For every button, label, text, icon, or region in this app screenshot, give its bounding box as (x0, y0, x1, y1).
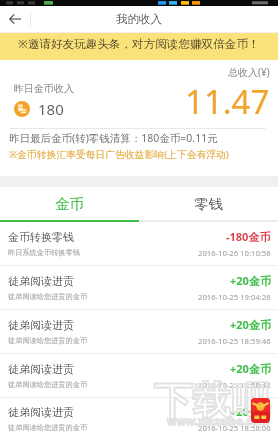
staticText: 2016-10-26 10:10:58 (198, 248, 271, 258)
staticText: www.xiazaiba.com (167, 413, 270, 428)
staticText: -180金币 (226, 229, 271, 244)
staticText: 金币转换零钱 (8, 230, 74, 244)
staticText: 金币 (55, 195, 84, 213)
staticText: 徒弟阅读给您进贡的金币 (8, 423, 88, 432)
staticText: 昨日系统金币转换零钱 (8, 248, 80, 257)
staticText: 2016-10-25 18:58:00 (198, 423, 271, 433)
staticText: +20金币 (230, 404, 271, 419)
button[interactable]: 金币 (0, 187, 139, 222)
other: 红包 (251, 398, 270, 423)
staticText: 徒弟阅读进贡 (8, 274, 74, 288)
staticText: 总收入(¥) (228, 65, 270, 79)
staticText: 180 (38, 99, 64, 119)
button[interactable]: 徒弟阅读进贡 (0, 266, 278, 310)
staticText: 2016-10-25 18:58:42 (198, 380, 271, 390)
staticText: ※邀请好友玩趣头条，对方阅读您赚双倍金币！ (18, 36, 260, 52)
staticText: +20金币 (230, 273, 271, 288)
staticText: 零钱 (194, 195, 223, 213)
staticText: 昨日最后金币(转)零钱清算：180金币=0.11元 (9, 131, 218, 145)
staticText: 2016-10-25 19:04:26 (198, 292, 271, 302)
staticText: 下载吧 (154, 377, 270, 426)
button[interactable]: 徒弟阅读进贡 (0, 354, 278, 398)
staticText: +20金币 (230, 361, 271, 376)
staticText: 11.47 (185, 79, 270, 124)
staticText: 徒弟阅读给您进贡的金币 (8, 292, 88, 301)
button[interactable]: ※邀请好友玩趣头条，对方阅读您赚双倍金币！ (0, 33, 278, 60)
staticText: 徒弟阅读进贡 (8, 318, 74, 332)
staticText: 徒弟阅读进贡 (8, 405, 74, 419)
staticText: 徒弟阅读进贡 (8, 362, 74, 376)
button[interactable]: 徒弟阅读进贡 (0, 398, 278, 439)
button[interactable]: 徒弟阅读进贡 (0, 310, 278, 354)
button[interactable]: Back (0, 6, 30, 32)
staticText: +20金币 (230, 317, 271, 332)
staticText: 徒弟阅读给您进贡的金币 (8, 380, 88, 389)
staticText: 徒弟阅读给您进贡的金币 (8, 336, 88, 345)
staticText: 昨日金币收入 (14, 82, 74, 95)
staticText: ※金币转换汇率受每日广告收益影响(上下会有浮动) (9, 148, 229, 161)
staticText: 我的收入 (116, 12, 162, 26)
button[interactable]: 金币转换零钱 (0, 222, 278, 266)
staticText: 2016-10-25 18:59:46 (198, 336, 271, 346)
button[interactable]: 零钱 (139, 187, 278, 222)
